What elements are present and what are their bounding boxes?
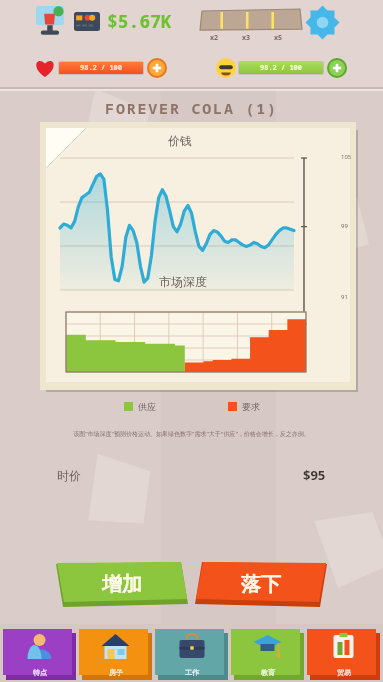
staticText: 供应 — [138, 401, 156, 412]
button[interactable]: Settings — [304, 4, 341, 41]
button[interactable]: 特点 — [3, 629, 76, 680]
staticText: $95 — [303, 466, 326, 484]
staticText: 该图"市场深度"预测价格运动。如果绿色数字"需求"大于"供应"，价格会增长，反之… — [14, 430, 369, 438]
staticText: 教育 — [261, 668, 275, 677]
staticText: 贸易 — [337, 668, 351, 677]
staticText: 98.2 / 100 — [80, 63, 122, 73]
staticText: 时价 — [57, 468, 81, 483]
staticText: 市场深度 — [40, 274, 326, 289]
button[interactable]: 教育 — [231, 629, 304, 680]
button[interactable]: 落下 — [195, 562, 327, 612]
staticText: 增加 — [102, 572, 142, 597]
staticText: x2 — [210, 33, 219, 43]
staticText: 91 — [341, 293, 348, 301]
staticText: 105 — [341, 153, 352, 161]
button[interactable]: Add mood — [327, 58, 347, 78]
staticText: 99 — [341, 222, 348, 230]
button[interactable]: Add health — [147, 58, 167, 78]
staticText: 要求 — [242, 401, 260, 412]
button[interactable]: 房子 — [79, 629, 152, 680]
button[interactable]: 工作 — [155, 629, 228, 680]
staticText: $5.67K — [107, 9, 172, 34]
staticText: 落下 — [241, 572, 281, 597]
staticText: 98.2 / 100 — [260, 63, 302, 73]
staticText: 价钱 — [40, 133, 320, 148]
staticText: 房子 — [109, 668, 123, 677]
staticText: 特点 — [33, 668, 47, 677]
staticText: FOREVER COLA (1) — [0, 98, 383, 118]
staticText: x3 — [242, 33, 251, 43]
button[interactable]: 贸易 — [307, 629, 380, 680]
staticText: x5 — [274, 33, 283, 43]
staticText: 工作 — [185, 668, 199, 677]
button[interactable]: 增加 — [56, 562, 188, 612]
